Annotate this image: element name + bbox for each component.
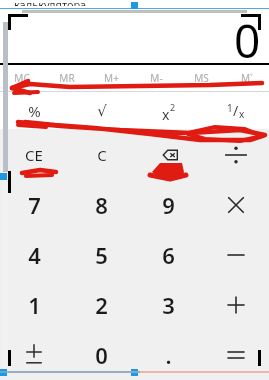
button[interactable]: 5 (68, 230, 135, 280)
staticText: MS (194, 71, 209, 85)
button[interactable]: 0 (68, 330, 135, 380)
button[interactable]: C (68, 129, 135, 180)
button[interactable]: Equals (202, 330, 269, 380)
button[interactable]: M- (134, 65, 179, 91)
staticText: 4 (28, 240, 41, 270)
staticText: √ (97, 102, 107, 119)
staticText: M- (150, 71, 163, 85)
staticText: C (97, 145, 107, 165)
button[interactable]: . (135, 330, 202, 380)
button[interactable]: √ (68, 92, 135, 129)
button[interactable]: M˅ (224, 65, 269, 91)
button[interactable]: Plus minus (0, 330, 68, 380)
staticText: MC (14, 71, 30, 85)
button[interactable]: Plus (202, 280, 269, 330)
button[interactable]: Multiply (202, 180, 269, 230)
button[interactable]: 8 (68, 180, 135, 230)
button[interactable]: MS (179, 65, 224, 91)
staticText: 2 (95, 290, 108, 320)
button[interactable]: 7 (0, 180, 68, 230)
button[interactable]: 4 (0, 230, 68, 280)
staticText: калькулятора (14, 0, 87, 6)
staticText: . (165, 340, 172, 370)
staticText: 1 (28, 290, 41, 320)
button[interactable]: MC (0, 65, 44, 91)
staticText: 2 (170, 101, 176, 113)
staticText: 0 (234, 9, 261, 59)
button[interactable]: Minus (202, 230, 269, 280)
staticText: 9 (162, 190, 175, 220)
staticText: x (239, 107, 245, 121)
button[interactable]: x (135, 92, 202, 129)
staticText: 5 (95, 240, 108, 270)
staticText: M+ (104, 71, 119, 85)
staticText: x (162, 105, 170, 124)
staticText: 1 (227, 101, 233, 115)
button[interactable]: Divide (202, 129, 269, 180)
staticText: / (233, 101, 239, 120)
button[interactable]: Backspace (135, 129, 202, 180)
staticText: 3 (162, 290, 175, 320)
staticText: CE (25, 145, 43, 165)
staticText: 8 (95, 190, 108, 220)
button[interactable]: M+ (89, 65, 134, 91)
button[interactable]: MR (44, 65, 89, 91)
button[interactable]: Reciprocal (202, 92, 269, 129)
staticText: 6 (162, 240, 175, 270)
button[interactable]: % (0, 92, 68, 129)
staticText: 7 (28, 190, 41, 220)
button[interactable]: 9 (135, 180, 202, 230)
staticText: % (28, 101, 41, 121)
button[interactable]: 1 (0, 280, 68, 330)
button[interactable]: 6 (135, 230, 202, 280)
button[interactable]: CE (0, 129, 68, 180)
staticText: M˅ (241, 71, 253, 85)
button[interactable]: 3 (135, 280, 202, 330)
staticText: 0 (95, 340, 108, 370)
staticText: MR (59, 71, 75, 85)
button[interactable]: 2 (68, 280, 135, 330)
